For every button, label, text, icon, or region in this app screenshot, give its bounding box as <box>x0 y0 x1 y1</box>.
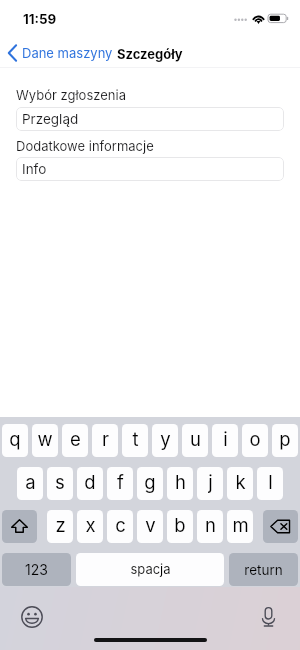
staticText: m <box>232 514 249 536</box>
staticText: r <box>102 428 109 450</box>
staticText: o <box>249 428 261 450</box>
staticText: Szczegóły <box>117 46 183 62</box>
staticText: n <box>205 514 216 536</box>
button[interactable]: o <box>242 424 268 457</box>
staticText: Dodatkowe informacje <box>16 138 154 154</box>
button[interactable]: Dictate <box>256 605 280 629</box>
button[interactable]: b <box>167 510 193 543</box>
staticText: w <box>37 428 53 450</box>
button[interactable]: p <box>272 424 298 457</box>
staticText: c <box>115 514 126 536</box>
button[interactable]: Shift <box>2 510 37 543</box>
staticText: Przegląd <box>22 111 79 127</box>
button[interactable]: h <box>167 467 193 500</box>
staticText: u <box>190 428 201 450</box>
button[interactable]: n <box>197 510 223 543</box>
button[interactable]: m <box>227 510 253 543</box>
button[interactable]: c <box>107 510 133 543</box>
button[interactable]: d <box>77 467 103 500</box>
button[interactable]: k <box>227 467 253 500</box>
button[interactable]: Dane maszyny <box>2 41 119 65</box>
staticText: s <box>55 471 65 493</box>
button[interactable]: Info <box>16 157 284 181</box>
staticText: d <box>84 471 96 493</box>
button[interactable]: r <box>92 424 118 457</box>
button[interactable]: x <box>77 510 103 543</box>
button[interactable]: y <box>152 424 178 457</box>
staticText: b <box>174 514 186 536</box>
staticText: j <box>208 471 213 493</box>
staticText: v <box>145 514 156 536</box>
staticText: e <box>70 428 81 450</box>
staticText: Wybór zgłoszenia <box>16 87 126 103</box>
staticText: f <box>117 471 124 493</box>
button[interactable]: l <box>257 467 283 500</box>
staticText: 11:59 <box>23 11 57 27</box>
button[interactable]: v <box>137 510 163 543</box>
button[interactable]: t <box>122 424 148 457</box>
button[interactable]: z <box>47 510 73 543</box>
staticText: Dane maszyny <box>22 45 113 61</box>
staticText: Info <box>22 161 47 177</box>
button[interactable]: u <box>182 424 208 457</box>
staticText: a <box>25 471 36 493</box>
staticText: q <box>9 428 21 450</box>
staticText: g <box>144 471 156 493</box>
button[interactable]: f <box>107 467 133 500</box>
staticText: p <box>279 428 291 450</box>
button[interactable]: Przegląd <box>16 107 284 131</box>
button[interactable]: 123 <box>2 553 71 586</box>
staticText: y <box>160 428 171 450</box>
staticText: 123 <box>25 561 48 578</box>
button[interactable]: return <box>229 553 298 586</box>
staticText: return <box>244 562 283 578</box>
button[interactable]: spacja <box>76 553 224 586</box>
staticText: t <box>132 428 139 450</box>
staticText: l <box>268 471 273 493</box>
staticText: z <box>55 514 66 536</box>
button[interactable]: e <box>62 424 88 457</box>
button[interactable]: a <box>17 467 43 500</box>
button[interactable]: q <box>2 424 28 457</box>
staticText: x <box>85 514 96 536</box>
staticText: spacja <box>130 561 171 577</box>
button[interactable]: w <box>32 424 58 457</box>
button[interactable]: Backspace <box>263 510 298 543</box>
button[interactable]: g <box>137 467 163 500</box>
staticText: h <box>175 471 186 493</box>
button[interactable]: Emoji keyboard <box>20 605 44 629</box>
button[interactable]: j <box>197 467 223 500</box>
staticText: i <box>223 428 228 450</box>
button[interactable]: i <box>212 424 238 457</box>
button[interactable]: s <box>47 467 73 500</box>
staticText: k <box>235 471 246 493</box>
